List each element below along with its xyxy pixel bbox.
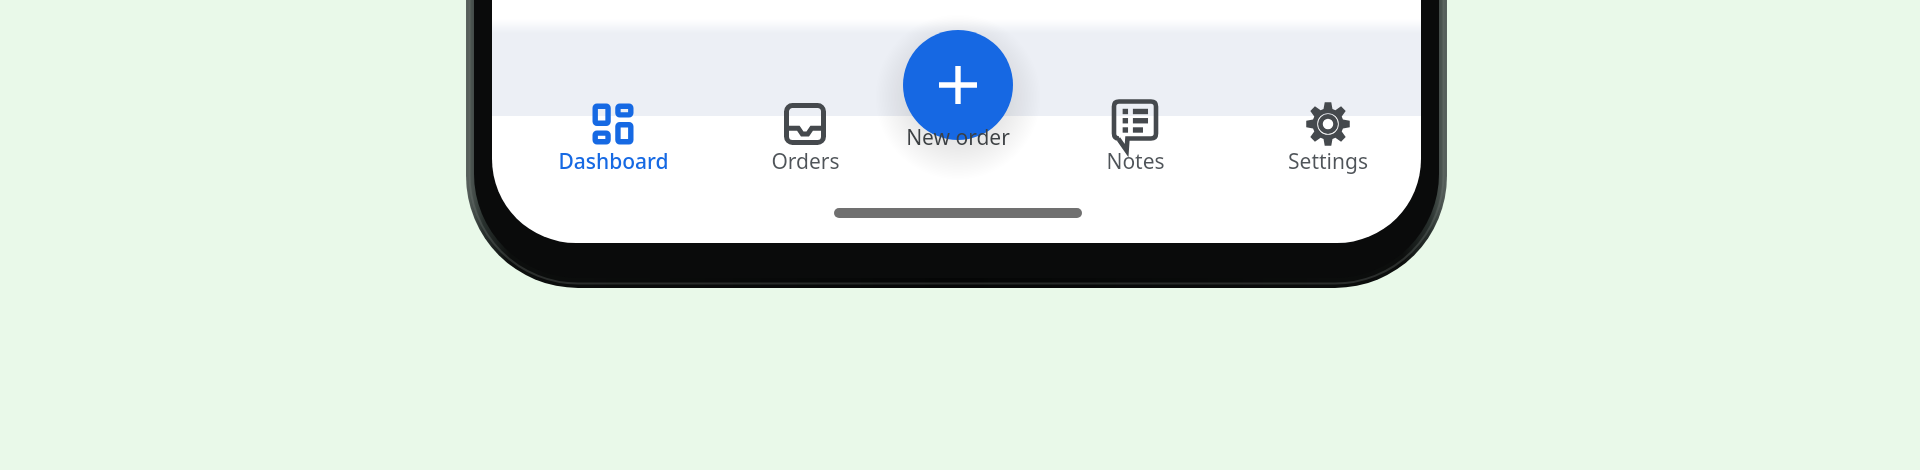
button[interactable]: Dashboard — [528, 98, 698, 180]
staticText: Settings — [1288, 147, 1368, 176]
button[interactable]: Notes — [1050, 98, 1220, 180]
button[interactable]: Settings — [1243, 98, 1413, 180]
staticText: Dashboard — [558, 147, 669, 176]
staticText: New order — [906, 123, 1010, 152]
button[interactable] — [873, 120, 1043, 156]
button[interactable]: New order — [903, 30, 1013, 140]
staticText: Notes — [1106, 147, 1165, 176]
button[interactable]: Orders — [720, 98, 890, 180]
staticText: Orders — [771, 147, 840, 176]
